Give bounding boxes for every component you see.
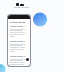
button[interactable] xyxy=(8,15,30,19)
button[interactable]: Section heading 3 xyxy=(10,55,28,66)
staticText: design system xyxy=(14,6,29,9)
button[interactable]: Compose xyxy=(26,58,29,61)
staticText: Lorem ipsum dolor sit amet consectetur a… xyxy=(10,43,28,53)
staticText: Getting started xyxy=(10,21,26,24)
staticText: Section heading 1 xyxy=(10,25,25,27)
staticText: Section heading 2 xyxy=(10,40,25,42)
staticText: Lorem ipsum dolor sit amet consectetur a… xyxy=(10,28,28,38)
staticText: Section heading 3 xyxy=(10,55,25,57)
staticText: Lorem ipsum dolor sit amet consectetur a… xyxy=(10,58,28,66)
button[interactable]: Section heading 1 xyxy=(10,25,28,40)
button[interactable]: Brand logo xyxy=(16,3,24,6)
button[interactable]: Section heading 2 xyxy=(10,40,28,55)
